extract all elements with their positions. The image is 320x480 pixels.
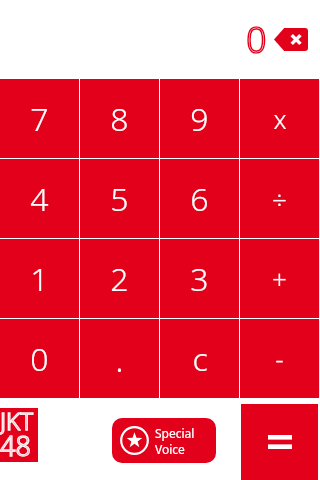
button[interactable]: 8 [80, 79, 159, 158]
staticText: Special [155, 425, 195, 441]
staticText: 0 [246, 15, 267, 64]
staticText: Voice [155, 441, 185, 457]
button[interactable]: 0 [0, 319, 79, 398]
button[interactable]: 9 [160, 79, 239, 158]
button[interactable]: + [240, 239, 319, 318]
staticText: 5 [110, 177, 129, 221]
staticText: JKT [0, 404, 33, 437]
staticText: 4 [30, 177, 49, 221]
button[interactable]: 6 [160, 159, 239, 238]
button[interactable]: 2 [80, 239, 159, 318]
button[interactable]: ÷ [240, 159, 319, 238]
button[interactable]: 4 [0, 159, 79, 238]
button[interactable]: Delete [274, 28, 308, 51]
staticText: c [192, 337, 208, 381]
button[interactable]: Special [112, 418, 216, 463]
button[interactable]: Equals [241, 404, 318, 480]
staticText: 48 [0, 427, 31, 464]
button[interactable]: 5 [80, 159, 159, 238]
staticText: 1 [30, 257, 49, 301]
button[interactable]: 3 [160, 239, 239, 318]
staticText: 8 [110, 97, 129, 141]
staticText: 9 [190, 97, 209, 141]
staticText: 7 [30, 97, 49, 141]
staticText: - [275, 341, 284, 376]
staticText: x [273, 101, 287, 136]
staticText: 2 [110, 257, 129, 301]
button[interactable]: c [160, 319, 239, 398]
button[interactable]: - [240, 319, 319, 398]
staticText: 0 [30, 337, 49, 381]
staticText: 3 [190, 257, 209, 301]
other: JKT48 [0, 408, 38, 462]
staticText: . [115, 336, 124, 382]
staticText: + [272, 261, 287, 296]
staticText: 6 [190, 177, 209, 221]
button[interactable]: x [240, 79, 319, 158]
button[interactable]: 7 [0, 79, 79, 158]
button[interactable]: . [80, 319, 159, 398]
staticText: ÷ [272, 181, 287, 216]
button[interactable]: 1 [0, 239, 79, 318]
